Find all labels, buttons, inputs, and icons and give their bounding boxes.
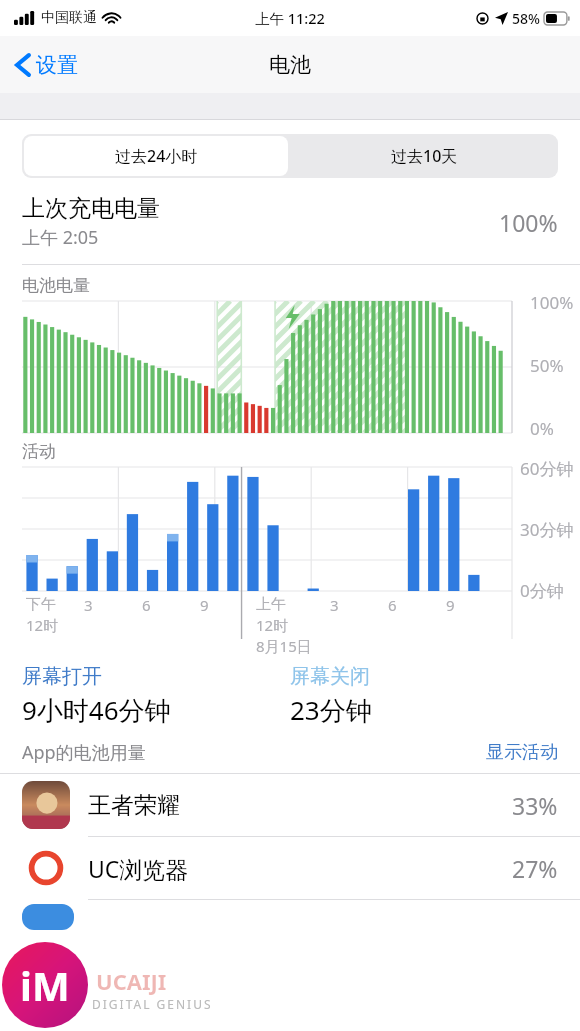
staticText: 9 — [200, 595, 209, 615]
staticText: 过去24小时 — [115, 145, 198, 167]
staticText: 活动 — [22, 441, 56, 462]
staticText: 58% — [512, 9, 540, 28]
staticText: 王者荣耀 — [88, 791, 512, 820]
staticText: 上午 12时 8月15日 — [256, 595, 312, 656]
button[interactable]: UC浏览器 — [0, 837, 580, 899]
staticText: UC浏览器 — [88, 853, 512, 884]
staticText: 显示活动 — [486, 741, 558, 764]
staticText: 23分钟 — [290, 692, 372, 728]
button[interactable]: 王者荣耀 — [0, 774, 580, 836]
staticText: 100% — [530, 291, 574, 314]
staticText: UCAIJI — [96, 966, 167, 996]
staticText: 下午 12时 — [26, 595, 59, 635]
staticText: 9小时46分钟 — [22, 692, 171, 728]
staticText: 50% — [530, 354, 564, 377]
staticText: 30分钟 — [520, 518, 574, 541]
staticText: 屏幕关闭 — [290, 664, 370, 689]
staticText: 100% — [499, 207, 558, 238]
staticText: 上次充电电量 — [22, 194, 160, 223]
staticText: 60分钟 — [520, 457, 574, 480]
staticText: 6 — [388, 595, 397, 615]
staticText: 上午 2:05 — [22, 225, 99, 250]
staticText: 电池电量 — [22, 275, 90, 296]
staticText: 6 — [142, 595, 151, 615]
staticText: 过去10天 — [391, 145, 458, 167]
staticText: App的电池用量 — [22, 740, 486, 765]
button[interactable]: 过去10天 — [290, 134, 558, 178]
staticText: 3 — [84, 595, 93, 615]
staticText: 0分钟 — [520, 579, 564, 602]
staticText: 设置 — [36, 52, 78, 78]
staticText: 9 — [446, 595, 455, 615]
staticText: DIGITAL GENIUS — [92, 996, 213, 1012]
staticText: iM — [20, 958, 70, 1012]
button[interactable]: 显示活动 — [486, 741, 558, 764]
button[interactable]: 设置 — [12, 46, 82, 84]
staticText: 27% — [512, 853, 558, 884]
staticText: 屏幕打开 — [22, 664, 102, 689]
staticText: 0% — [530, 417, 554, 435]
staticText: 电池 — [269, 52, 311, 78]
button[interactable]: 过去24小时 — [24, 136, 288, 176]
staticText: 33% — [512, 790, 558, 821]
staticText: 中国联通 — [41, 9, 97, 27]
staticText: 上午 11:22 — [255, 8, 325, 28]
staticText: 3 — [330, 595, 339, 615]
